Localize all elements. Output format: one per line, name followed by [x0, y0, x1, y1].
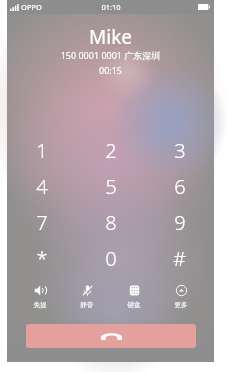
staticText: 键盘	[111, 301, 157, 309]
staticText: 4	[36, 173, 48, 200]
button[interactable]: 4	[7, 168, 76, 204]
staticText: Mike	[7, 24, 214, 50]
button[interactable]: *	[7, 240, 76, 276]
button[interactable]: 8	[76, 204, 145, 240]
button[interactable]: Speaker	[17, 284, 63, 309]
staticText: 8	[105, 209, 117, 236]
staticText: 3	[174, 137, 186, 164]
button[interactable]: 0	[76, 240, 145, 276]
button[interactable]: 3	[145, 132, 214, 168]
button[interactable]: 7	[7, 204, 76, 240]
staticText: OPPO	[21, 2, 42, 12]
button[interactable]: 2	[76, 132, 145, 168]
button[interactable]: 1	[7, 132, 76, 168]
button[interactable]: Mute	[64, 284, 110, 309]
staticText: 5	[105, 173, 117, 200]
button[interactable]: 5	[76, 168, 145, 204]
staticText: 01:10	[101, 2, 121, 12]
button[interactable]: More	[158, 284, 204, 309]
button[interactable]: 9	[145, 204, 214, 240]
staticText: 150 0001 0001 广东深圳	[7, 49, 214, 61]
staticText: 7	[36, 209, 48, 236]
staticText: 1	[36, 137, 48, 164]
staticText: 6	[174, 173, 186, 200]
button[interactable]: End call	[26, 324, 196, 348]
staticText: 00:15	[7, 64, 214, 76]
staticText: 0	[105, 245, 117, 272]
staticText: 免提	[17, 301, 63, 309]
staticText: 静音	[64, 301, 110, 309]
button[interactable]: #	[145, 240, 214, 276]
staticText: *	[36, 245, 48, 272]
staticText: 9	[174, 209, 186, 236]
button[interactable]: 6	[145, 168, 214, 204]
staticText: #	[173, 245, 186, 272]
button[interactable]: Keypad	[111, 284, 157, 309]
staticText: 更多	[158, 301, 204, 309]
staticText: 2	[105, 137, 117, 164]
